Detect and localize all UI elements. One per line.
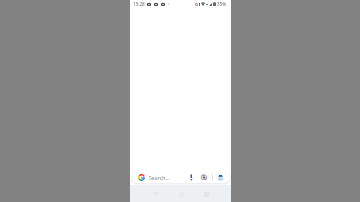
button[interactable]: Account [217,174,224,181]
staticText: 15:28 [133,1,145,7]
staticText: 35% [217,1,227,7]
button[interactable]: Search... [132,171,230,183]
staticText: Search... [149,174,170,181]
